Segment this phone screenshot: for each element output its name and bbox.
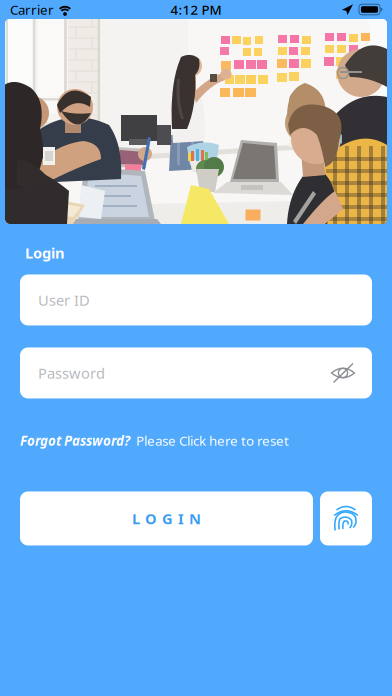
- staticText: LOGIN: [132, 509, 201, 528]
- staticText: Login: [25, 243, 65, 262]
- staticText: Carrier: [10, 1, 54, 18]
- button[interactable]: Forgot Password?: [0, 398, 372, 450]
- staticText: Password: [38, 363, 105, 383]
- staticText: Forgot Password?: [20, 432, 130, 449]
- staticText: 4:12 PM: [170, 1, 221, 18]
- staticText: Please Click here to reset: [130, 432, 289, 449]
- button[interactable]: Sign in with Touch ID: [320, 491, 372, 545]
- staticText: User ID: [38, 290, 90, 310]
- button[interactable]: LOGIN: [20, 491, 313, 545]
- button[interactable]: Show password: [330, 362, 356, 384]
